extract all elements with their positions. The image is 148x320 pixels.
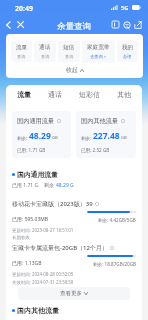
- staticText: 我的: [122, 44, 134, 51]
- staticText: 5G: [121, 4, 129, 11]
- staticText: 剩余: [44, 182, 56, 189]
- staticText: 查询: [65, 54, 74, 59]
- staticText: 长期有效: [12, 235, 30, 241]
- staticText: 办理: [123, 54, 132, 59]
- staticText: 国内通用流量: [17, 170, 58, 179]
- staticText: 流量: [16, 44, 28, 51]
- button[interactable]: Back: [2, 18, 14, 31]
- staticText: 更新时间: 2024-08-28 00:52:05: [12, 271, 74, 277]
- button[interactable]: 宝藏卡专属流量包-20GB（12个月）: [6, 244, 142, 285]
- button[interactable]: Recents: [110, 18, 121, 31]
- staticText: 已用: 1.71 GB: [17, 147, 46, 153]
- staticText: 查询: [17, 54, 26, 59]
- staticText: 剩余:: [81, 135, 93, 141]
- staticText: 查询: [41, 54, 50, 59]
- button[interactable]: Share: [132, 18, 143, 31]
- staticText: 其他: [117, 90, 131, 99]
- button[interactable]: Close: [14, 18, 27, 31]
- staticText: 剩余: 18.87GB/20GB: [93, 261, 136, 267]
- button[interactable]: 短彩信: [74, 87, 105, 102]
- staticText: 查看更多: [60, 290, 82, 297]
- button[interactable]: 短信: [58, 41, 80, 62]
- button[interactable]: 我的: [117, 41, 138, 62]
- button[interactable]: 流量: [12, 87, 36, 102]
- staticText: 国内其他流量: [81, 117, 119, 125]
- staticText: 剩余:: [17, 135, 29, 141]
- staticText: 短信: [63, 44, 75, 51]
- button[interactable]: 其他: [112, 87, 136, 102]
- staticText: 家庭宽带: [87, 44, 110, 51]
- staticText: 48.29: [29, 130, 51, 142]
- staticText: 收起: [66, 66, 78, 74]
- staticText: 48.29 G: [56, 182, 74, 189]
- button[interactable]: 收起: [63, 65, 87, 75]
- staticText: 失效时间: 2024-07-31 23:59:59: [12, 279, 74, 285]
- staticText: GB: [52, 135, 58, 141]
- staticText: 20:49: [15, 4, 33, 14]
- button[interactable]: 移动花卡宝藏版（2023版）39: [6, 200, 142, 241]
- button[interactable]: 通话: [34, 41, 56, 62]
- staticText: 国内其他流量: [17, 306, 59, 315]
- button[interactable]: 查看更多: [18, 287, 130, 300]
- staticText: 余量查询: [57, 21, 91, 32]
- staticText: 国内通用流量: [17, 117, 55, 125]
- button[interactable]: 国内通用流量: [12, 111, 71, 158]
- staticText: 短彩信: [79, 90, 100, 99]
- staticText: 通话: [48, 90, 62, 99]
- button[interactable]: 通话: [43, 87, 67, 102]
- staticText: 移动花卡宝藏版（2023版）39: [12, 200, 93, 208]
- staticText: 227.48: [93, 130, 120, 142]
- staticText: 已用: 2.52 GB: [81, 147, 110, 153]
- staticText: 已用: 595.03MB: [12, 216, 49, 223]
- button[interactable]: 国内其他流量: [76, 111, 136, 158]
- staticText: 已用 1.71 G: [12, 182, 39, 189]
- staticText: 剩余: 4.42GB/5GB: [98, 217, 136, 223]
- staticText: 通话: [39, 44, 51, 51]
- button[interactable]: 流量: [11, 41, 32, 62]
- staticText: 更新时间: 2023-08-27 18:51:01: [12, 227, 74, 233]
- staticText: 去查询 >: [90, 54, 107, 60]
- button[interactable]: 家庭宽带: [82, 41, 115, 63]
- staticText: GB: [121, 135, 127, 141]
- staticText: 宝藏卡专属流量包-20GB（12个月）: [12, 244, 108, 252]
- button[interactable]: Customer service: [121, 18, 132, 31]
- staticText: 流量: [17, 90, 31, 99]
- staticText: 已用: 1.13GB: [12, 260, 42, 267]
